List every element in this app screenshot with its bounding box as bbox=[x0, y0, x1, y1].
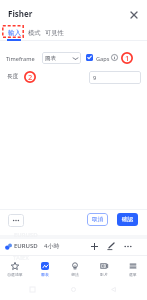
button[interactable]: Back bbox=[111, 287, 116, 292]
staticText: 圖表 bbox=[45, 55, 57, 62]
button[interactable]: 確認 bbox=[117, 213, 138, 226]
button[interactable]: Gaps bbox=[86, 54, 93, 61]
button[interactable]: 輸入 bbox=[2, 26, 27, 40]
staticText: 選單 bbox=[129, 272, 137, 277]
staticText: 2 bbox=[28, 72, 33, 82]
staticText: Timeframe bbox=[6, 55, 35, 63]
button[interactable]: 可見性 bbox=[43, 26, 66, 40]
staticText: 取消 bbox=[92, 216, 104, 223]
button[interactable]: 取消 bbox=[87, 213, 108, 226]
staticText: 圖表 bbox=[41, 272, 49, 277]
staticText: Gaps bbox=[96, 55, 110, 63]
staticText: 影片 bbox=[100, 272, 108, 277]
button[interactable]: 圖表 bbox=[42, 52, 81, 64]
staticText: 4小時 bbox=[44, 242, 60, 250]
staticText: 1 bbox=[125, 53, 130, 63]
button[interactable]: Add indicator bbox=[87, 239, 101, 253]
button[interactable]: 模式 bbox=[26, 26, 42, 40]
button[interactable]: 9 bbox=[89, 71, 141, 84]
staticText: 模式 bbox=[28, 29, 41, 37]
staticText: Fisher bbox=[8, 8, 33, 19]
button[interactable]: Home bbox=[71, 287, 76, 292]
button[interactable]: 選單 bbox=[118, 259, 147, 281]
button[interactable]: Recents bbox=[30, 287, 35, 292]
button[interactable]: Close bbox=[126, 7, 141, 22]
staticText: EURUSD bbox=[14, 231, 38, 239]
staticText: 長度 bbox=[7, 73, 19, 80]
staticText: 可見性 bbox=[45, 29, 64, 37]
button[interactable]: More bbox=[121, 239, 135, 253]
button[interactable]: 想法 bbox=[60, 259, 89, 281]
button[interactable]: 影片 bbox=[89, 259, 118, 281]
button[interactable]: 圖表 bbox=[30, 259, 60, 281]
staticText: 輸入 bbox=[8, 29, 22, 37]
button[interactable]: 自選清單 bbox=[0, 259, 30, 281]
staticText: 自選清單 bbox=[7, 272, 23, 277]
button[interactable]: More settings bbox=[8, 214, 24, 227]
staticText: EURUSD bbox=[14, 242, 38, 250]
staticText: 9 bbox=[93, 74, 97, 82]
button[interactable]: Drawing tools bbox=[104, 239, 118, 253]
staticText: TAIEX bbox=[13, 254, 30, 262]
staticText: 想法 bbox=[71, 272, 79, 277]
staticText: 確認 bbox=[122, 216, 134, 223]
